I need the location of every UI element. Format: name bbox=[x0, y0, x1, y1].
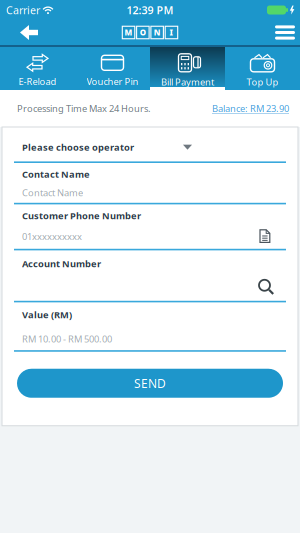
staticText: N bbox=[154, 27, 161, 38]
staticText: Balance: RM 23.90 bbox=[212, 102, 289, 115]
staticText: Contact Name bbox=[22, 168, 90, 180]
button[interactable]: Top Up bbox=[225, 47, 300, 90]
staticText: Voucher Pin bbox=[86, 75, 138, 88]
staticText: O bbox=[140, 27, 146, 38]
staticText: RM 10.00 - RM 500.00 bbox=[22, 333, 112, 345]
button[interactable]: Search bbox=[259, 280, 298, 295]
staticText: E-Reload bbox=[18, 75, 56, 88]
staticText: Processing Time Max 24 Hours. bbox=[17, 102, 151, 115]
staticText: M bbox=[124, 27, 132, 38]
staticText: Contact Name bbox=[22, 186, 83, 199]
staticText: Customer Phone Number bbox=[22, 209, 141, 222]
staticText: Top Up bbox=[246, 76, 278, 88]
staticText: Account Number bbox=[22, 257, 101, 270]
button[interactable]: Menu bbox=[275, 21, 300, 44]
button[interactable]: Balance: RM 23.90 bbox=[212, 102, 289, 115]
staticText: 12:39 PM bbox=[126, 3, 173, 17]
staticText: Please choose operator bbox=[22, 141, 134, 153]
button[interactable]: Voucher Pin bbox=[75, 47, 150, 90]
staticText: SEND bbox=[134, 375, 166, 391]
staticText: Carrier bbox=[6, 3, 40, 17]
button[interactable]: Please choose operator bbox=[2, 141, 298, 153]
staticText: I bbox=[169, 27, 173, 38]
button[interactable]: Bill Payment bbox=[150, 47, 225, 90]
button[interactable]: Contacts bbox=[259, 229, 298, 244]
button[interactable]: Back bbox=[0, 20, 38, 45]
button[interactable]: SEND bbox=[17, 369, 283, 398]
staticText: Bill Payment bbox=[161, 76, 214, 88]
button[interactable]: E-Reload bbox=[0, 47, 75, 90]
staticText: Value (RM) bbox=[22, 308, 72, 321]
staticText: 01xxxxxxxxxx bbox=[22, 230, 82, 242]
